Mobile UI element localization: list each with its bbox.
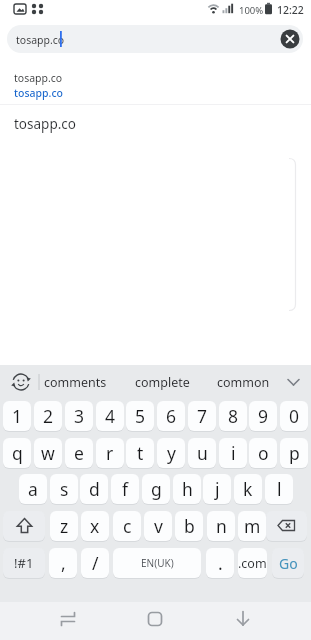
staticText: b — [184, 514, 195, 538]
staticText: y — [167, 441, 176, 465]
staticText: n — [216, 514, 227, 538]
staticText: 7 — [197, 404, 208, 428]
staticText: , — [61, 551, 66, 575]
staticText: h — [182, 477, 193, 501]
staticText: o — [258, 441, 269, 465]
staticText: 6 — [166, 404, 177, 428]
staticText: e — [74, 441, 84, 465]
staticText: tosapp.co — [14, 71, 63, 85]
staticText: tosapp.co — [14, 115, 76, 133]
staticText: u — [197, 441, 208, 465]
staticText: t — [137, 441, 144, 465]
staticText: 1 — [12, 404, 23, 428]
staticText: 0 — [289, 404, 300, 428]
staticText: m — [244, 514, 261, 538]
staticText: tosapp.co — [14, 86, 63, 100]
staticText: 8 — [228, 404, 239, 428]
staticText: 2 — [43, 404, 54, 428]
staticText: z — [60, 514, 69, 538]
staticText: 3 — [74, 404, 85, 428]
staticText: 5 — [135, 404, 146, 428]
staticText: c — [123, 514, 132, 538]
staticText: x — [90, 514, 100, 538]
staticText: Go — [279, 554, 298, 573]
staticText: 9 — [258, 404, 269, 428]
staticText: 12:22 — [277, 3, 304, 17]
staticText: r — [106, 441, 114, 465]
staticText: f — [122, 477, 129, 501]
staticText: / — [92, 551, 99, 575]
staticText: EN(UK) — [141, 556, 174, 570]
staticText: !#1 — [14, 554, 34, 572]
staticText: i — [231, 441, 236, 465]
staticText: a — [28, 477, 38, 501]
staticText: w — [41, 441, 55, 465]
staticText: .com — [238, 555, 267, 572]
staticText: l — [277, 477, 282, 501]
staticText: complete — [135, 374, 190, 391]
staticText: g — [151, 477, 162, 501]
staticText: . — [218, 551, 223, 575]
staticText: d — [89, 477, 100, 501]
staticText: j — [215, 477, 220, 501]
staticText: comments — [44, 374, 107, 391]
staticText: 4 — [105, 404, 116, 428]
staticText: v — [154, 514, 163, 538]
staticText: 100% — [239, 4, 264, 17]
staticText: p — [289, 441, 300, 465]
staticText: tosapp.co — [16, 33, 65, 47]
staticText: q — [12, 441, 23, 465]
staticText: common — [217, 374, 270, 391]
staticText: k — [243, 477, 253, 501]
staticText: s — [60, 477, 69, 501]
